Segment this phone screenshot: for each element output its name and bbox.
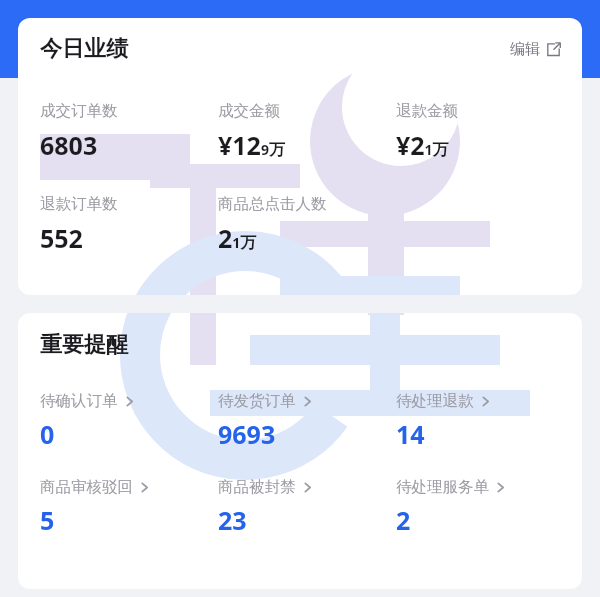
button[interactable]: 商品被封禁	[218, 477, 396, 537]
staticText: 552	[40, 221, 83, 255]
staticText: 商品审核驳回	[40, 477, 133, 497]
staticText: 退款金额	[396, 101, 458, 121]
staticText: 0	[40, 417, 55, 451]
button[interactable]: 待发货订单	[218, 391, 396, 451]
staticText: 退款订单数	[40, 194, 118, 214]
button[interactable]: 待确认订单	[40, 391, 218, 451]
staticText: 商品总点击人数	[218, 194, 327, 214]
staticText: 待处理退款	[396, 391, 474, 411]
staticText: 21万	[218, 221, 257, 255]
staticText: 5	[40, 503, 55, 537]
staticText: 重要提醒	[40, 331, 128, 359]
staticText: 6803	[40, 128, 98, 162]
staticText: ¥129万	[218, 128, 285, 162]
staticText: 2	[396, 503, 411, 537]
staticText: 14	[396, 417, 425, 451]
button[interactable]: 待处理服务单	[396, 477, 574, 537]
staticText: 23	[218, 503, 247, 537]
other: Edit	[546, 42, 561, 57]
staticText: 成交金额	[218, 101, 280, 121]
staticText: 待发货订单	[218, 391, 296, 411]
staticText: 待确认订单	[40, 391, 118, 411]
button[interactable]: 商品审核驳回	[40, 477, 218, 537]
staticText: 今日业绩	[40, 35, 128, 63]
staticText: ¥21万	[396, 128, 449, 162]
staticText: 9693	[218, 417, 276, 451]
button[interactable]: 编辑	[507, 35, 564, 64]
button[interactable]: 待处理退款	[396, 391, 574, 451]
staticText: 待处理服务单	[396, 477, 489, 497]
staticText: 商品被封禁	[218, 477, 296, 497]
staticText: 编辑	[510, 40, 540, 59]
staticText: 成交订单数	[40, 101, 118, 121]
